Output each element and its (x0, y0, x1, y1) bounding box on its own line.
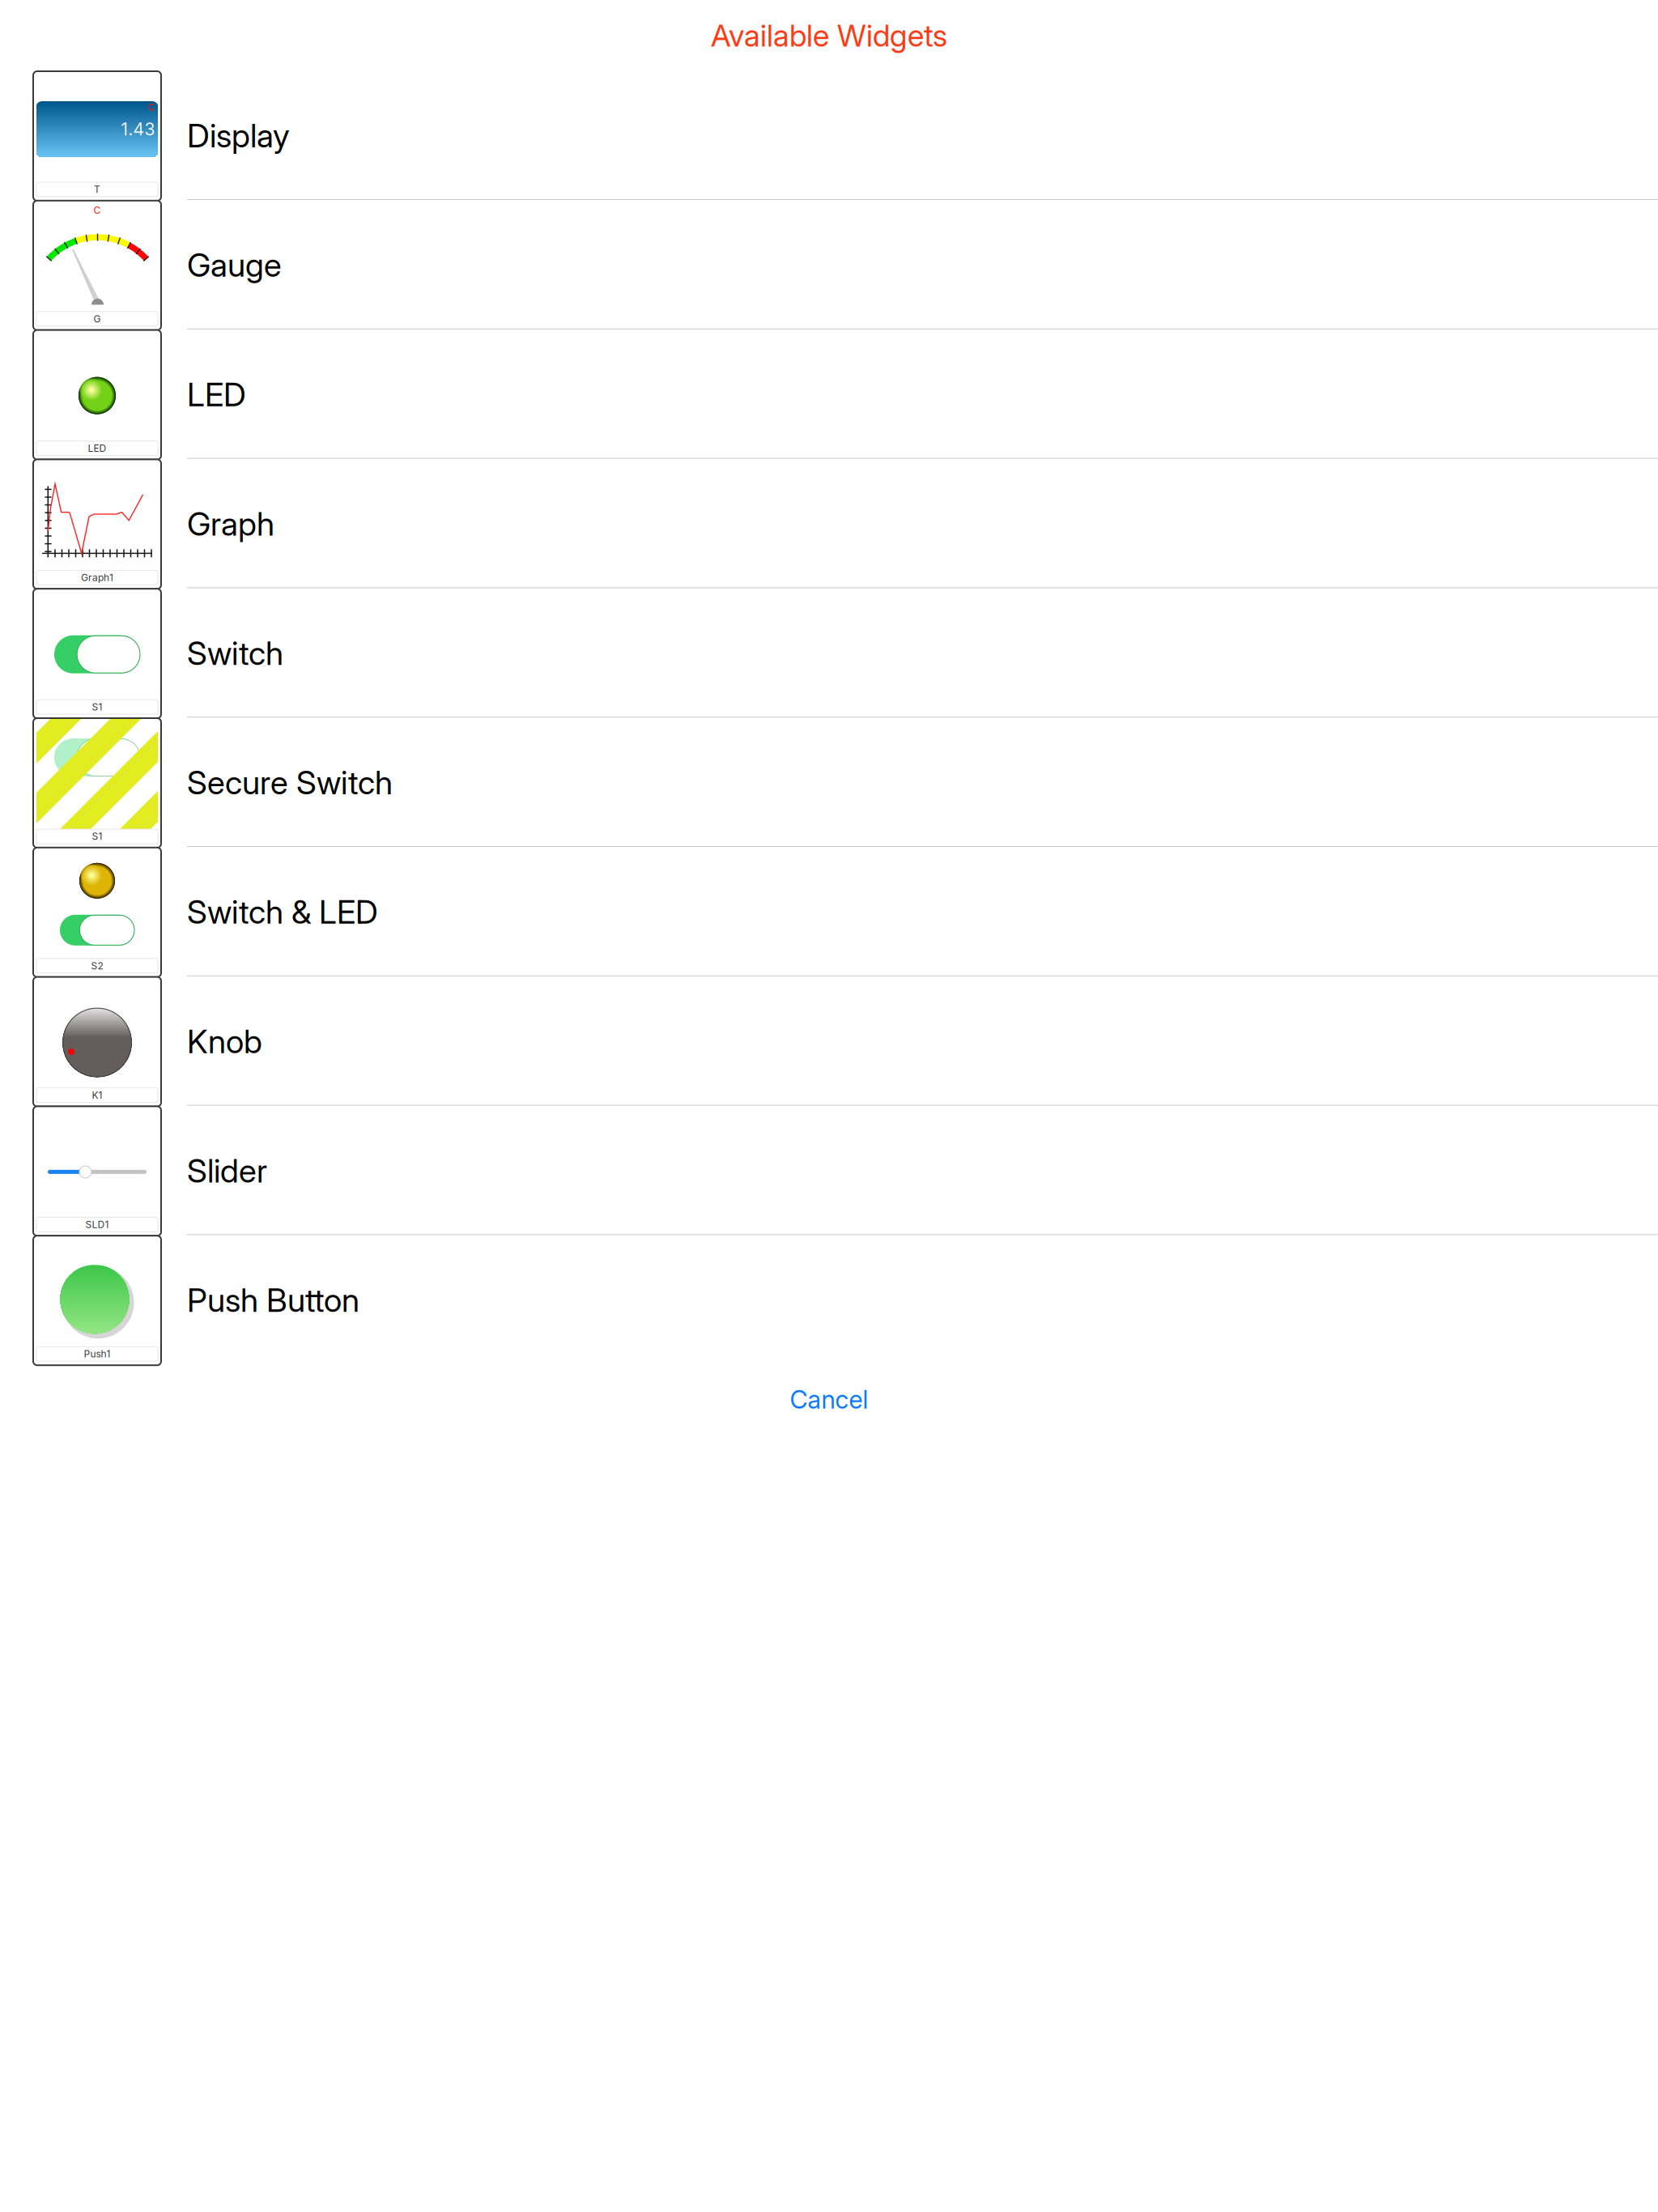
button[interactable]: S2 (0, 848, 1658, 977)
staticText: Graph1 (81, 572, 113, 583)
staticText: C (148, 101, 155, 113)
button[interactable]: C (0, 71, 1658, 201)
staticText: Secure Switch (187, 763, 393, 802)
button[interactable]: Cancel (0, 1365, 1658, 1434)
staticText: G (94, 313, 101, 325)
button[interactable]: SLD1 (0, 1106, 1658, 1236)
staticText: Switch & LED (187, 892, 378, 932)
staticText: 1.43 (121, 119, 155, 140)
staticText: Cancel (790, 1384, 868, 1414)
staticText: T (94, 184, 100, 195)
staticText: Push Button (187, 1280, 359, 1320)
button[interactable]: C (0, 201, 1658, 330)
button[interactable]: Push1 (0, 1236, 1658, 1365)
staticText: S1 (92, 701, 102, 713)
staticText: S1 (92, 830, 102, 842)
button[interactable]: K1 (0, 977, 1658, 1106)
button[interactable]: LED (0, 330, 1658, 459)
staticText: Push1 (84, 1348, 111, 1360)
staticText: SLD1 (85, 1219, 109, 1230)
staticText: Available Widgets (711, 17, 947, 54)
staticText: LED (88, 442, 106, 454)
staticText: LED (187, 375, 246, 414)
staticText: Display (187, 116, 290, 155)
staticText: Graph (187, 504, 274, 543)
staticText: Knob (187, 1022, 262, 1061)
staticText: Switch (187, 634, 283, 673)
staticText: Gauge (187, 245, 282, 285)
button[interactable]: Graph1 (0, 459, 1658, 589)
staticText: K1 (92, 1089, 102, 1101)
button[interactable]: S1 (0, 589, 1658, 718)
staticText: Slider (187, 1151, 267, 1190)
button[interactable]: S1 (0, 718, 1658, 848)
staticText: C (94, 204, 101, 216)
staticText: S2 (91, 960, 103, 972)
